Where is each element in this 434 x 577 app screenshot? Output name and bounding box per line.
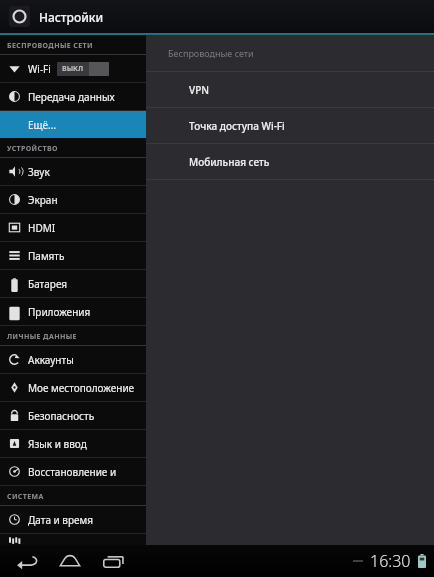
button[interactable]: HDMI bbox=[0, 214, 146, 241]
button[interactable]: Звук bbox=[0, 158, 146, 185]
staticText: ВЫКЛ bbox=[62, 64, 84, 74]
button[interactable]: Дата и время bbox=[0, 506, 146, 533]
staticText: ЛИЧНЫЕ ДАННЫЕ bbox=[7, 332, 77, 342]
button[interactable] bbox=[0, 534, 146, 545]
staticText: Экран bbox=[28, 193, 58, 207]
button[interactable]: Назад bbox=[10, 548, 42, 574]
staticText: HDMI bbox=[28, 221, 56, 235]
staticText: VPN bbox=[189, 83, 210, 97]
staticText: 16:30 bbox=[370, 550, 411, 572]
button[interactable]: Мое местоположение bbox=[0, 374, 146, 401]
staticText: Передача данных bbox=[28, 90, 115, 104]
button[interactable]: Настройки bbox=[9, 6, 30, 27]
button[interactable]: Восстановление и сбро bbox=[0, 458, 146, 485]
staticText: Звук bbox=[28, 165, 50, 179]
staticText: Память bbox=[28, 249, 65, 263]
button[interactable]: Передача данных bbox=[0, 83, 146, 110]
staticText: Дата и время bbox=[28, 513, 94, 527]
button[interactable]: Главный экран bbox=[54, 548, 86, 574]
button[interactable]: Wi-Fi выкл bbox=[57, 62, 109, 76]
button[interactable]: Ещё... bbox=[0, 111, 146, 138]
button[interactable]: VPN bbox=[146, 72, 434, 107]
staticText: Беспроводные сети bbox=[168, 47, 254, 59]
button[interactable]: Экран bbox=[0, 186, 146, 213]
staticText: Wi-Fi bbox=[28, 62, 51, 76]
button[interactable]: Приложения bbox=[0, 298, 146, 325]
button[interactable]: Wi-Fi bbox=[0, 55, 146, 82]
staticText: Мое местоположение bbox=[28, 381, 135, 395]
staticText: Точка доступа Wi-Fi bbox=[189, 119, 285, 133]
staticText: Приложения bbox=[28, 305, 91, 319]
staticText: Настройки bbox=[39, 9, 104, 25]
button[interactable]: Память bbox=[0, 242, 146, 269]
button[interactable]: Мобильная сеть bbox=[146, 144, 434, 179]
staticText: БЕСПРОВОДНЫЕ СЕТИ bbox=[7, 41, 93, 51]
staticText: Язык и ввод bbox=[28, 437, 87, 451]
staticText: Ещё... bbox=[28, 118, 57, 132]
staticText: СИСТЕМА bbox=[7, 492, 44, 502]
button[interactable]: Недавние приложения bbox=[98, 548, 130, 574]
button[interactable]: Безопасность bbox=[0, 402, 146, 429]
button[interactable]: Аккаунты bbox=[0, 346, 146, 373]
staticText: Безопасность bbox=[28, 409, 95, 423]
button[interactable]: Точка доступа Wi-Fi bbox=[146, 108, 434, 143]
button[interactable]: Батарея bbox=[418, 554, 426, 568]
staticText: Аккаунты bbox=[28, 353, 74, 367]
staticText: Мобильная сеть bbox=[189, 155, 270, 169]
button[interactable]: Батарея bbox=[0, 270, 146, 297]
staticText: УСТРОЙСТВО bbox=[7, 144, 58, 154]
staticText: Восстановление и сбро bbox=[28, 465, 140, 479]
staticText: Батарея bbox=[28, 277, 68, 291]
button[interactable]: Язык и ввод bbox=[0, 430, 146, 457]
